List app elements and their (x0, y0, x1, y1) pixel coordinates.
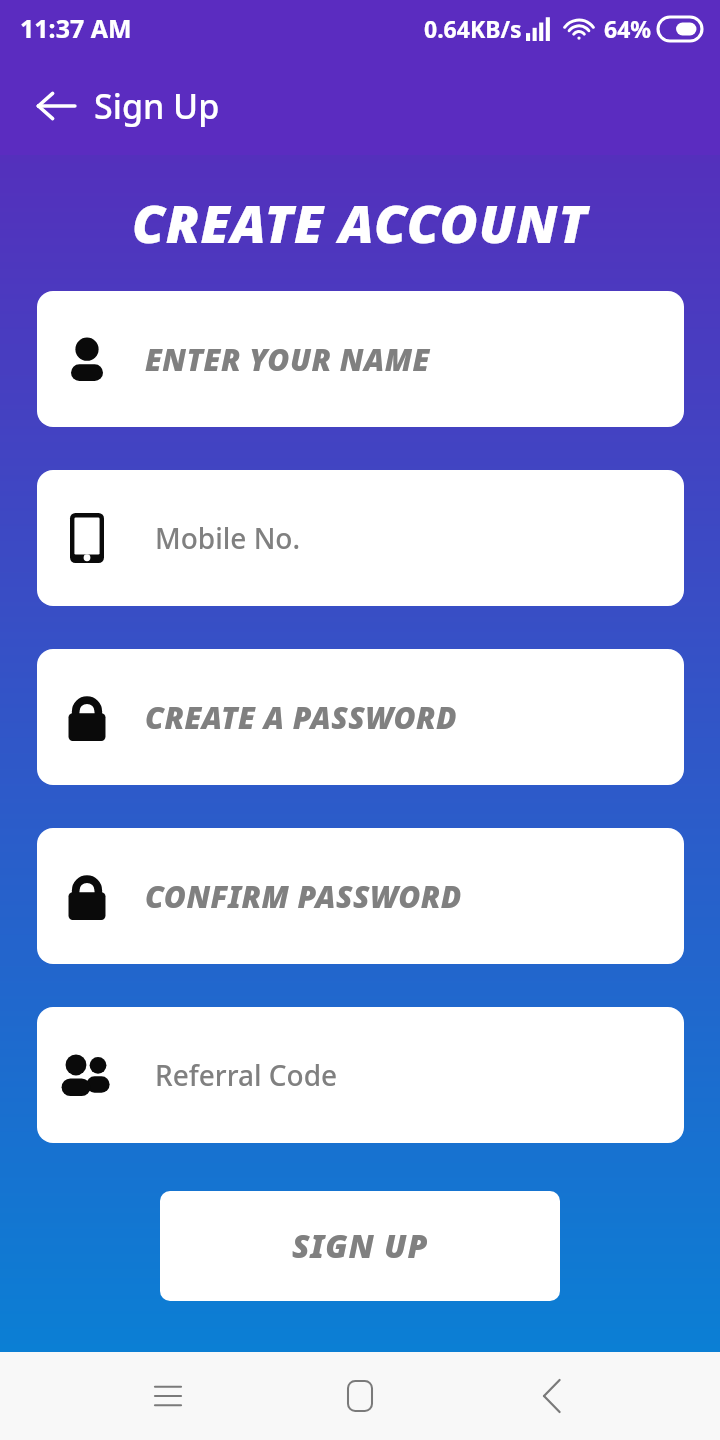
staticText: ENTER YOUR NAME (145, 339, 430, 380)
staticText: CREATE ACCOUNT (0, 187, 720, 258)
staticText: SIGN UP (292, 1224, 429, 1268)
staticText: Referral Code (155, 1056, 338, 1094)
staticText: 64% (604, 13, 652, 44)
button[interactable]: Back (28, 78, 84, 134)
button[interactable]: Referral Code (37, 1007, 684, 1143)
staticText: Sign Up (94, 83, 220, 129)
button[interactable]: Home (320, 1356, 400, 1436)
button[interactable]: Back (512, 1356, 592, 1436)
button[interactable]: CREATE A PASSWORD (37, 649, 684, 785)
staticText: 11:37 AM (20, 11, 132, 45)
staticText: CONFIRM PASSWORD (145, 876, 462, 917)
button[interactable]: ENTER YOUR NAME (37, 291, 684, 427)
staticText: CREATE A PASSWORD (145, 697, 458, 738)
button[interactable]: Recents (128, 1356, 208, 1436)
button[interactable]: SIGN UP (160, 1191, 560, 1301)
staticText: Mobile No. (155, 519, 301, 557)
button[interactable]: CONFIRM PASSWORD (37, 828, 684, 964)
button[interactable]: Mobile No. (37, 470, 684, 606)
staticText: 0.64KB/s (424, 13, 522, 44)
